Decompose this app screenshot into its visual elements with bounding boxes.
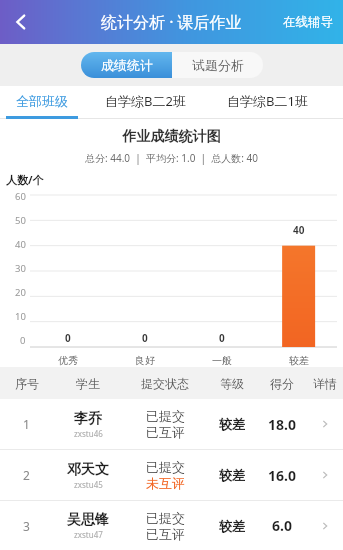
button[interactable]: 自学综B二1班 xyxy=(206,86,328,116)
staticText: 成绩统计 xyxy=(101,57,153,73)
staticText: 0 xyxy=(142,331,148,345)
staticText: 较差 xyxy=(289,354,309,367)
staticText: 60 xyxy=(15,190,26,203)
staticText: zxstu46 xyxy=(74,428,103,439)
staticText: 良好 xyxy=(135,354,155,367)
staticText: 0 xyxy=(219,331,225,345)
staticText: 已互评 xyxy=(146,424,185,440)
staticText: 全部班级 xyxy=(16,93,68,109)
staticText: 6.0 xyxy=(272,516,292,535)
button[interactable]: 自学综B二2班 xyxy=(84,86,206,116)
staticText: 已提交 xyxy=(146,510,185,526)
button[interactable]: 试题分析 xyxy=(172,52,263,78)
button[interactable]: 2 xyxy=(0,450,343,500)
staticText: 20 xyxy=(15,286,26,299)
staticText: 0 xyxy=(65,331,71,345)
staticText: 学生 xyxy=(76,376,100,391)
button[interactable]: 成绩统计 xyxy=(81,52,172,78)
staticText: 得分 xyxy=(270,376,294,391)
staticText: 在线辅导 xyxy=(283,14,333,30)
staticText: 2 xyxy=(23,467,30,483)
staticText: 作业成绩统计图 xyxy=(0,128,343,146)
button[interactable]: Back xyxy=(0,0,42,44)
staticText: 18.0 xyxy=(268,415,296,434)
staticText: 已提交 xyxy=(146,459,185,475)
button[interactable]: 全部班级 xyxy=(0,86,84,116)
staticText: zxstu47 xyxy=(74,529,103,540)
staticText: 未互评 xyxy=(146,475,185,491)
staticText: 1 xyxy=(23,416,30,432)
staticText: 较差 xyxy=(219,467,245,483)
staticText: 40 xyxy=(15,238,26,251)
staticText: 40 xyxy=(293,223,305,237)
staticText: 10 xyxy=(15,310,26,323)
staticText: 人数/个 xyxy=(6,172,44,187)
button[interactable]: 1 xyxy=(0,399,343,449)
staticText: 50 xyxy=(15,214,26,227)
staticText: 自学综B二1班 xyxy=(227,92,308,110)
staticText: 等级 xyxy=(220,376,244,391)
staticText: 3 xyxy=(23,518,30,534)
staticText: 较差 xyxy=(219,518,245,534)
staticText: 李乔 xyxy=(74,410,102,428)
staticText: 一般 xyxy=(212,354,232,367)
staticText: 邓天文 xyxy=(67,461,109,479)
staticText: 较差 xyxy=(219,416,245,432)
button[interactable]: 在线辅导 xyxy=(273,0,343,44)
staticText: 30 xyxy=(15,262,26,275)
staticText: 0 xyxy=(20,334,26,347)
staticText: 提交状态 xyxy=(141,376,189,391)
staticText: 详情 xyxy=(313,376,337,391)
staticText: 吴思锋 xyxy=(67,511,109,529)
staticText: 已提交 xyxy=(146,408,185,424)
staticText: 16.0 xyxy=(268,466,296,485)
staticText: zxstu45 xyxy=(74,479,103,490)
staticText: 总分: 44.0 | 平均分: 1.0 | 总人数: 40 xyxy=(0,151,343,165)
button[interactable]: 3 xyxy=(0,501,343,550)
staticText: 试题分析 xyxy=(192,57,244,73)
staticText: 优秀 xyxy=(58,354,78,367)
staticText: 自学综B二2班 xyxy=(105,92,186,110)
staticText: 统计分析 · 课后作业 xyxy=(101,11,242,33)
staticText: 序号 xyxy=(15,376,39,391)
staticText: 已互评 xyxy=(146,526,185,542)
